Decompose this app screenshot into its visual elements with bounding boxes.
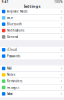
button[interactable]: iCloud [0, 47, 64, 53]
button[interactable]: Airplane Mode [0, 8, 64, 15]
staticText: Messages [7, 86, 19, 89]
button[interactable]: General [0, 34, 64, 40]
staticText: 9:41 [2, 0, 9, 4]
button[interactable]: Mail [0, 65, 64, 72]
staticText: General [7, 35, 18, 39]
staticText: 100% [54, 0, 62, 4]
staticText: Airplane Mode [7, 10, 28, 13]
staticText: Notifications [7, 29, 24, 32]
staticText: Settings [23, 4, 40, 9]
button[interactable]: Reminders [0, 78, 64, 84]
button[interactable]: Wi-Fi [0, 15, 64, 21]
button[interactable]: Passwords [0, 53, 64, 59]
staticText: Mail [7, 67, 12, 70]
button[interactable]: Notes [0, 72, 64, 78]
button[interactable]: Bluetooth [0, 21, 64, 27]
staticText: Reminders [7, 79, 22, 83]
button[interactable]: Messages [0, 84, 64, 91]
button[interactable]: Notifications [0, 27, 64, 34]
staticText: Safari [7, 92, 13, 96]
staticText: Wi-Fi [7, 16, 13, 20]
staticText: iCloud [7, 48, 17, 51]
staticText: Notes [7, 73, 15, 76]
button[interactable]: Safari [0, 91, 64, 97]
staticText: Bluetooth [7, 22, 22, 26]
staticText: Passwords [7, 54, 20, 58]
